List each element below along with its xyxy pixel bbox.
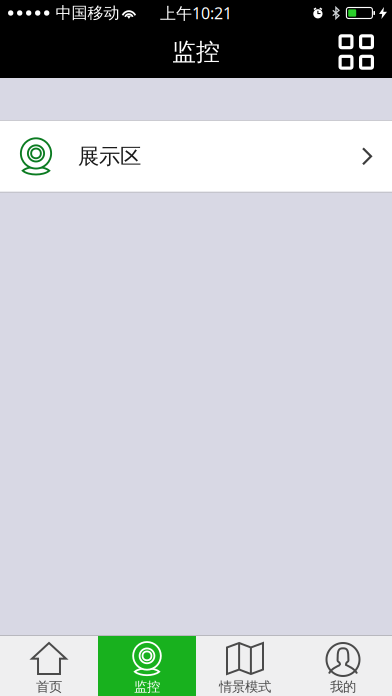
button[interactable]: 展示区 [0,120,392,193]
button[interactable]: Grid view [328,27,392,77]
staticText: 中国移动 [55,3,119,23]
staticText: 监控 [172,37,220,67]
staticText: 首页 [36,679,62,695]
staticText: 情景模式 [219,679,271,695]
button[interactable]: 情景模式 [196,636,294,696]
staticText: 上午10:21 [160,2,232,24]
button[interactable]: 首页 [0,636,98,696]
staticText: 我的 [330,679,356,695]
button[interactable]: 监控 [98,636,196,696]
staticText: 展示区 [78,143,141,169]
staticText: 监控 [134,679,160,695]
button[interactable]: 我的 [294,636,392,696]
